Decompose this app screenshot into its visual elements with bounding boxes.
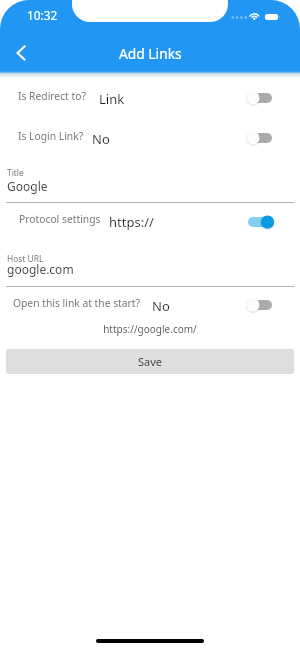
button[interactable]: Title bbox=[7, 167, 24, 178]
button[interactable]: Back bbox=[6, 38, 36, 68]
staticText: Is Redirect to? bbox=[18, 89, 86, 103]
staticText: https:// bbox=[109, 213, 154, 231]
staticText: Is Login Link? bbox=[18, 129, 84, 143]
button[interactable]: Switch off bbox=[245, 127, 279, 149]
button[interactable]: Is Redirect to? bbox=[0, 86, 300, 110]
staticText: google.com bbox=[7, 261, 74, 277]
button[interactable]: Is Login Link? bbox=[0, 126, 300, 150]
staticText: Google bbox=[7, 178, 48, 194]
button[interactable]: Open this link at the start? bbox=[0, 293, 300, 317]
staticText: Link bbox=[99, 90, 125, 108]
staticText: Title bbox=[7, 167, 24, 178]
staticText: Save bbox=[138, 354, 163, 369]
button[interactable]: Host URL bbox=[7, 253, 44, 264]
button[interactable]: Switch off bbox=[245, 294, 279, 316]
staticText: No bbox=[152, 297, 170, 315]
staticText: Open this link at the start? bbox=[13, 296, 141, 310]
button[interactable]: Switch off bbox=[245, 87, 279, 109]
staticText: Protocol settings bbox=[19, 212, 101, 226]
staticText: Host URL bbox=[7, 253, 44, 264]
staticText: No bbox=[92, 130, 110, 148]
button[interactable]: Save bbox=[6, 349, 294, 374]
staticText: 10:32 bbox=[27, 7, 58, 23]
staticText: Add Links bbox=[119, 44, 182, 63]
button[interactable]: Protocol settings bbox=[0, 209, 300, 233]
staticText: https://google.com/ bbox=[0, 322, 300, 336]
button[interactable]: Switch on bbox=[246, 211, 280, 233]
